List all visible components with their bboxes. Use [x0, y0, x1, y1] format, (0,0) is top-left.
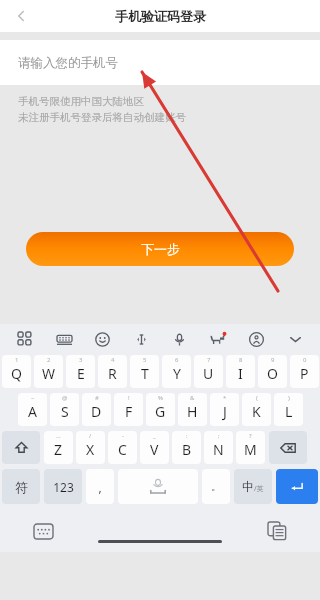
staticText: I [238, 364, 243, 383]
staticText: # [95, 394, 99, 402]
staticText: 符 [15, 479, 28, 495]
button[interactable]: 5 [130, 355, 159, 388]
button[interactable]: ! [114, 393, 143, 426]
staticText: 4 [111, 356, 115, 364]
button[interactable]: 123 [44, 469, 82, 504]
button[interactable]: 下一步 [26, 232, 294, 266]
button[interactable]: 2 [34, 355, 63, 388]
button[interactable]: 。 [202, 469, 230, 504]
button[interactable]: ~ [18, 393, 47, 426]
button[interactable]: 7 [194, 355, 223, 388]
staticText: R [108, 364, 117, 383]
button[interactable]: @ [50, 393, 79, 426]
button[interactable]: Enter [276, 469, 318, 504]
staticText: - [122, 432, 124, 440]
button[interactable]: Emoji [91, 328, 113, 350]
button[interactable]: Apps [14, 328, 36, 350]
button[interactable]: Collapse keyboard [284, 328, 306, 350]
button[interactable]: / [76, 431, 105, 464]
staticText: ( [256, 394, 258, 402]
staticText: C [118, 440, 127, 459]
staticText: T [141, 364, 149, 383]
staticText: … [56, 432, 61, 440]
staticText: ! [128, 394, 130, 402]
button[interactable]: Account [245, 328, 267, 350]
staticText: 6 [175, 356, 179, 364]
staticText: A [28, 402, 37, 421]
button[interactable]: 符 [2, 469, 40, 504]
staticText: 下一步 [141, 241, 180, 257]
button[interactable]: ; [204, 431, 233, 464]
staticText: 手机号限使用中国大陆地区 [18, 95, 144, 108]
staticText: 手机验证码登录 [115, 8, 206, 24]
button[interactable]: 3 [66, 355, 95, 388]
staticText: * [223, 394, 227, 402]
staticText: / [89, 432, 92, 440]
staticText: P [300, 364, 309, 383]
button[interactable]: 6 [162, 355, 191, 388]
button[interactable]: , [86, 469, 114, 504]
staticText: W [42, 364, 56, 383]
button[interactable]: 中 [234, 469, 272, 504]
button[interactable]: Text edit [130, 328, 152, 350]
staticText: ; [218, 432, 220, 440]
staticText: S [61, 402, 69, 421]
staticText: Q [11, 364, 22, 383]
button[interactable]: 9 [258, 355, 287, 388]
staticText: B [182, 440, 192, 459]
staticText: 。 [211, 480, 221, 493]
button[interactable]: Shift [2, 431, 40, 464]
button[interactable]: - [108, 431, 137, 464]
staticText: 8 [239, 356, 243, 364]
button[interactable]: Clipboard [264, 518, 290, 544]
staticText: K [252, 402, 261, 421]
staticText: H [187, 402, 198, 421]
button[interactable]: ) [274, 393, 303, 426]
staticText: 未注册手机号登录后将自动创建账号 [18, 111, 186, 124]
button[interactable]: Switch keyboard [30, 518, 56, 544]
button[interactable]: ? [236, 431, 265, 464]
button[interactable]: Back [6, 1, 36, 31]
staticText: @ [62, 394, 68, 402]
staticText: L [285, 402, 293, 421]
staticText: Z [54, 440, 63, 459]
staticText: Y [173, 364, 181, 383]
button[interactable]: _ [140, 431, 169, 464]
button[interactable]: … [44, 431, 73, 464]
button[interactable]: 1 [2, 355, 31, 388]
staticText: N [213, 440, 224, 459]
staticText: 123 [53, 479, 74, 495]
button[interactable]: Space [118, 469, 198, 504]
button[interactable]: Keyboard layout [53, 328, 75, 350]
staticText: D [91, 402, 102, 421]
button[interactable]: 请输入您的手机号 [0, 40, 320, 85]
staticText: ) [288, 394, 290, 402]
button[interactable]: : [172, 431, 201, 464]
staticText: J [223, 402, 227, 421]
staticText: O [267, 364, 278, 383]
staticText: ~ [31, 394, 35, 402]
button[interactable]: 8 [226, 355, 255, 388]
staticText: ? [249, 432, 252, 440]
button[interactable]: & [178, 393, 207, 426]
staticText: 请输入您的手机号 [18, 55, 118, 71]
button[interactable]: % [146, 393, 175, 426]
staticText: : [186, 432, 188, 440]
staticText: U [203, 364, 214, 383]
button[interactable]: ( [242, 393, 271, 426]
button[interactable]: # [82, 393, 111, 426]
staticText: /英 [254, 484, 264, 494]
staticText: 3 [79, 356, 83, 364]
button[interactable]: Voice input [168, 328, 190, 350]
staticText: & [190, 394, 195, 402]
staticText: F [125, 402, 133, 421]
button[interactable]: Backspace [269, 431, 307, 464]
button[interactable]: 4 [98, 355, 127, 388]
staticText: V [150, 440, 159, 459]
button[interactable]: * [210, 393, 239, 426]
staticText: _ [153, 432, 156, 440]
staticText: G [155, 402, 166, 421]
staticText: M [244, 440, 257, 459]
button[interactable]: 0 [290, 355, 319, 388]
button[interactable]: Stickers [207, 328, 229, 350]
